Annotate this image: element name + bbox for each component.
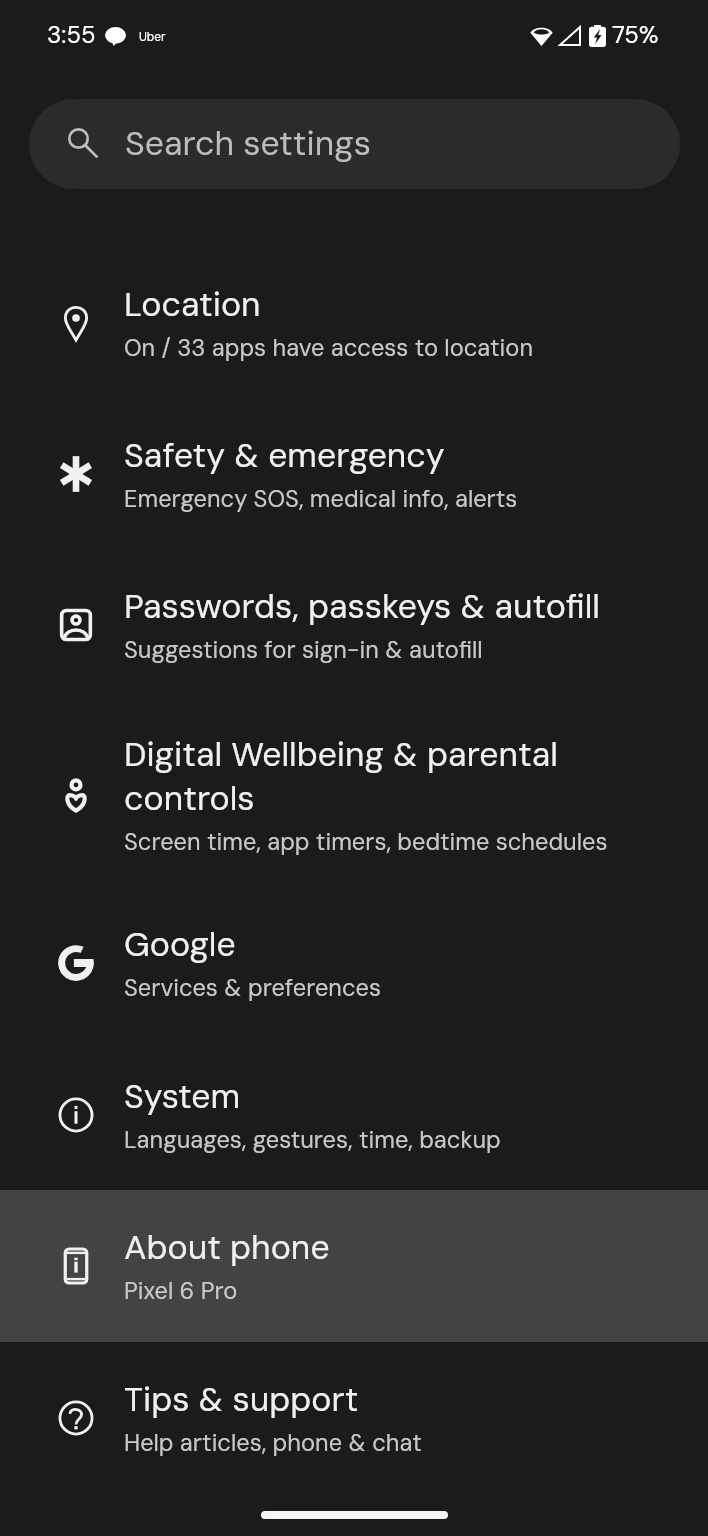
other: Search bbox=[67, 127, 99, 159]
button[interactable]: Google bbox=[0, 894, 708, 1032]
staticText: Screen time, app timers, bedtime schedul… bbox=[124, 827, 608, 858]
staticText: Languages, gestures, time, backup bbox=[124, 1125, 501, 1156]
staticText: Pixel 6 Pro bbox=[124, 1276, 238, 1307]
staticText: Location bbox=[124, 282, 261, 326]
button[interactable]: Location bbox=[0, 254, 708, 392]
staticText: 75% bbox=[612, 19, 659, 50]
staticText: System bbox=[124, 1074, 241, 1118]
staticText: Digital Wellbeing & parental controls bbox=[124, 732, 652, 820]
button[interactable]: Digital Wellbeing & parental controls bbox=[0, 704, 708, 886]
button[interactable]: Safety & emergency bbox=[0, 405, 708, 543]
staticText: Emergency SOS, medical info, alerts bbox=[124, 484, 518, 515]
button[interactable]: Passwords, passkeys & autofill bbox=[0, 556, 708, 694]
button[interactable]: Tips & support bbox=[0, 1349, 708, 1487]
button[interactable]: About phone bbox=[0, 1197, 708, 1335]
staticText: Services & preferences bbox=[124, 973, 381, 1004]
staticText: Tips & support bbox=[124, 1377, 359, 1421]
staticText: Suggestions for sign-in & autofill bbox=[124, 635, 483, 666]
staticText: Uber bbox=[139, 29, 166, 45]
staticText: 3:55 bbox=[47, 19, 96, 50]
staticText: Google bbox=[124, 922, 236, 966]
button[interactable]: Search bbox=[29, 99, 680, 189]
staticText: About phone bbox=[124, 1225, 330, 1269]
staticText: Help articles, phone & chat bbox=[124, 1428, 422, 1459]
staticText: Search settings bbox=[125, 121, 371, 165]
staticText: Safety & emergency bbox=[124, 433, 445, 477]
button[interactable]: System bbox=[0, 1046, 708, 1184]
staticText: Passwords, passkeys & autofill bbox=[124, 584, 600, 628]
staticText: On / 33 apps have access to location bbox=[124, 333, 534, 364]
